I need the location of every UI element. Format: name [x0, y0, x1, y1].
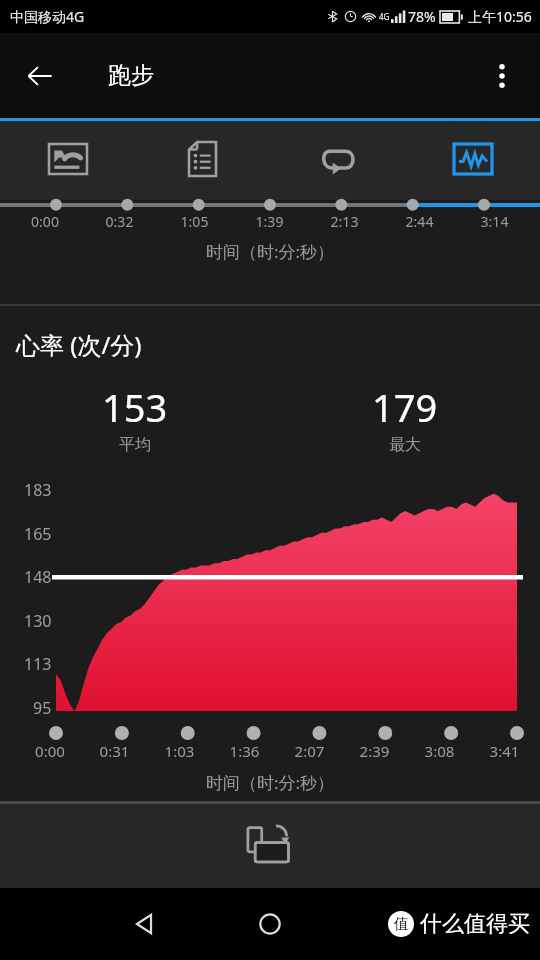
- button[interactable]: Details: [135, 118, 270, 200]
- staticText: 上午10:56: [468, 7, 532, 26]
- staticText: 什么值得买: [420, 910, 530, 938]
- staticText: 183: [24, 479, 52, 501]
- staticText: 1:39: [232, 212, 307, 231]
- button[interactable]: Map: [0, 118, 135, 200]
- staticText: 1:36: [212, 741, 277, 761]
- staticText: 平均: [119, 435, 151, 455]
- staticText: 1:03: [147, 741, 212, 761]
- staticText: 时间（时:分:秒）: [206, 240, 335, 263]
- staticText: 165: [24, 523, 52, 545]
- staticText: 4G: [379, 11, 390, 22]
- staticText: 时间（时:分:秒）: [0, 771, 540, 794]
- staticText: 中国移动4G: [10, 7, 85, 26]
- button[interactable]: Charts: [405, 118, 540, 200]
- staticText: 3:41: [472, 741, 537, 761]
- staticText: 值: [394, 915, 409, 934]
- staticText: 0:31: [82, 741, 147, 761]
- button[interactable]: More options: [474, 48, 530, 104]
- staticText: 3:14: [457, 212, 532, 231]
- button[interactable]: Back: [12, 48, 68, 104]
- staticText: 179: [372, 381, 438, 433]
- staticText: 2:39: [342, 741, 407, 761]
- staticText: 148: [24, 566, 52, 588]
- staticText: 3:08: [407, 741, 472, 761]
- button[interactable]: Home: [246, 900, 294, 948]
- staticText: 1:05: [157, 212, 232, 231]
- staticText: 78%: [408, 7, 436, 26]
- staticText: 0:00: [8, 212, 82, 231]
- staticText: 2:13: [307, 212, 382, 231]
- button[interactable]: Rotate screen: [0, 804, 540, 888]
- staticText: 心率 (次/分): [16, 328, 142, 361]
- staticText: 2:44: [382, 212, 457, 231]
- staticText: 95: [33, 697, 52, 719]
- staticText: 113: [24, 653, 52, 675]
- staticText: 2:07: [277, 741, 342, 761]
- button[interactable]: Back: [120, 900, 168, 948]
- button[interactable]: Laps: [270, 118, 405, 200]
- staticText: 0:32: [82, 212, 157, 231]
- staticText: 跑步: [108, 61, 154, 90]
- staticText: 最大: [389, 435, 421, 455]
- staticText: 0:00: [18, 741, 82, 761]
- staticText: 130: [24, 610, 52, 632]
- staticText: 153: [102, 381, 168, 433]
